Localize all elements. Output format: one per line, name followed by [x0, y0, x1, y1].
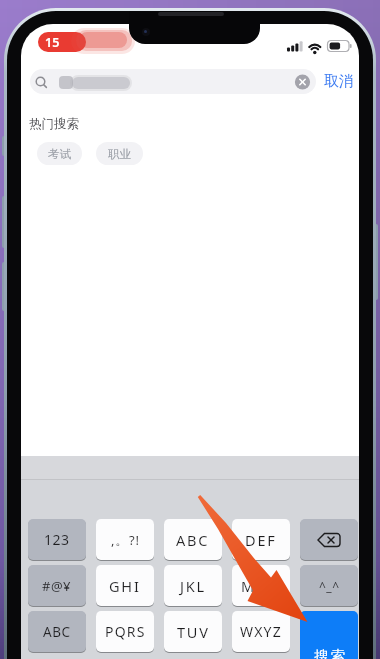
staticText: 123 [44, 530, 70, 549]
staticText: WXYZ [240, 622, 282, 641]
button[interactable]: 职业 [96, 142, 143, 165]
staticText: ABC [176, 530, 210, 550]
staticText: 取消 [324, 72, 354, 91]
staticText: 15 [45, 34, 60, 51]
staticText: 考试 [48, 147, 71, 161]
staticText: DEF [245, 530, 277, 550]
button[interactable]: ABC [164, 519, 222, 560]
staticText: GHI [109, 576, 141, 596]
staticText: 职业 [108, 147, 131, 161]
button[interactable]: ,。?! [96, 519, 154, 560]
button[interactable]: 搜索 [300, 611, 358, 659]
staticText: 搜索 [313, 647, 346, 659]
button[interactable] [30, 69, 316, 94]
button[interactable]: JKL [164, 565, 222, 606]
staticText: PQRS [105, 622, 146, 641]
button[interactable]: DEF [232, 519, 290, 560]
button[interactable]: 考试 [37, 142, 82, 165]
button[interactable]: WXYZ [232, 611, 290, 652]
staticText: TUV [177, 622, 210, 642]
staticText: ABC [43, 623, 71, 641]
staticText: ,。?! [111, 531, 140, 549]
button[interactable] [300, 519, 358, 560]
button[interactable]: TUV [164, 611, 222, 652]
button[interactable]: 取消 [324, 72, 354, 91]
button[interactable]: #@¥ [28, 565, 86, 606]
button[interactable]: ^_^ [300, 565, 358, 606]
button[interactable]: PQRS [96, 611, 154, 652]
staticText: ^_^ [319, 578, 340, 594]
staticText: 热门搜索 [29, 116, 79, 132]
button[interactable]: ABC [28, 611, 86, 652]
staticText: MNO [241, 576, 282, 596]
button[interactable]: MNO [232, 565, 290, 606]
button[interactable]: GHI [96, 565, 154, 606]
staticText: #@¥ [42, 577, 72, 595]
staticText: JKL [180, 576, 206, 596]
button[interactable]: 123 [28, 519, 86, 560]
